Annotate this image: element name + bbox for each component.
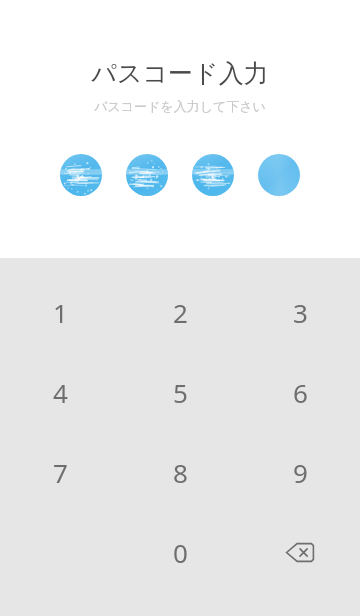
staticText: パスコードを入力して下さい [94, 98, 266, 114]
staticText: 7 [53, 455, 68, 490]
staticText: 4 [53, 375, 68, 410]
button[interactable]: 9 [240, 443, 360, 502]
staticText: 2 [173, 295, 188, 330]
staticText: 3 [293, 295, 308, 330]
button[interactable]: 2 [120, 283, 240, 342]
button[interactable]: 0 [120, 523, 240, 582]
staticText: 0 [173, 535, 188, 570]
staticText: 6 [293, 375, 308, 410]
button[interactable]: 8 [120, 443, 240, 502]
staticText: 8 [173, 455, 188, 490]
staticText: 9 [293, 455, 308, 490]
staticText: 5 [173, 375, 188, 410]
button[interactable]: 7 [0, 443, 120, 502]
button[interactable]: 1 [0, 283, 120, 342]
staticText: 1 [53, 295, 68, 330]
button[interactable]: Backspace [240, 523, 360, 582]
button[interactable]: 4 [0, 363, 120, 422]
button[interactable]: 5 [120, 363, 240, 422]
button[interactable]: 6 [240, 363, 360, 422]
button[interactable]: 3 [240, 283, 360, 342]
staticText: パスコード入力 [91, 58, 269, 89]
